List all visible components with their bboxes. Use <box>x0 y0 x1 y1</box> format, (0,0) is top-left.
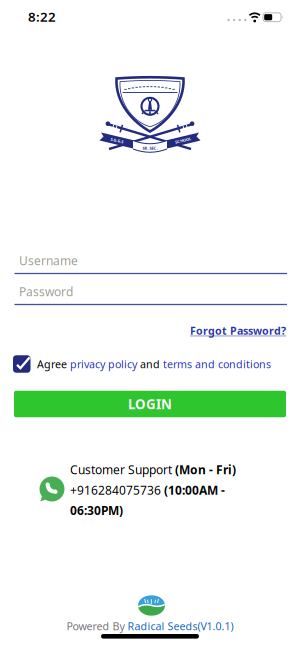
staticText: S.G.G.S <box>110 138 123 143</box>
staticText: Forgot Password? <box>190 323 286 338</box>
staticText: LOGIN <box>128 395 172 413</box>
staticText: 8:22 <box>28 8 56 25</box>
staticText: +916284075736 (10:00AM - <box>70 482 225 498</box>
staticText: privacy policy <box>70 357 137 371</box>
staticText: terms and conditions <box>163 357 271 371</box>
button[interactable]: privacy policy <box>70 357 137 371</box>
staticText: Radical Seeds(V1.0.1) <box>127 619 233 633</box>
staticText: SCHOOL <box>175 138 191 143</box>
staticText: Username <box>19 252 78 268</box>
button[interactable]: LOGIN <box>14 391 286 417</box>
staticText: and <box>137 357 163 371</box>
textField[interactable]: Password <box>19 283 287 299</box>
staticText: 06:30PM) <box>70 502 123 518</box>
button[interactable]: Agree to terms <box>13 355 30 373</box>
staticText: Powered By <box>66 619 127 633</box>
button[interactable]: Powered By <box>66 619 233 633</box>
button[interactable]: terms and conditions <box>163 357 271 371</box>
textField[interactable]: Username <box>19 252 287 268</box>
button[interactable]: Forgot Password? <box>190 323 286 338</box>
staticText: SR. SEC. <box>142 145 157 151</box>
staticText: Agree <box>37 357 70 371</box>
staticText: Password <box>19 283 73 299</box>
staticText: Customer Support (Mon - Fri) <box>70 462 236 477</box>
button[interactable]: Contact customer support on WhatsApp <box>31 464 241 516</box>
